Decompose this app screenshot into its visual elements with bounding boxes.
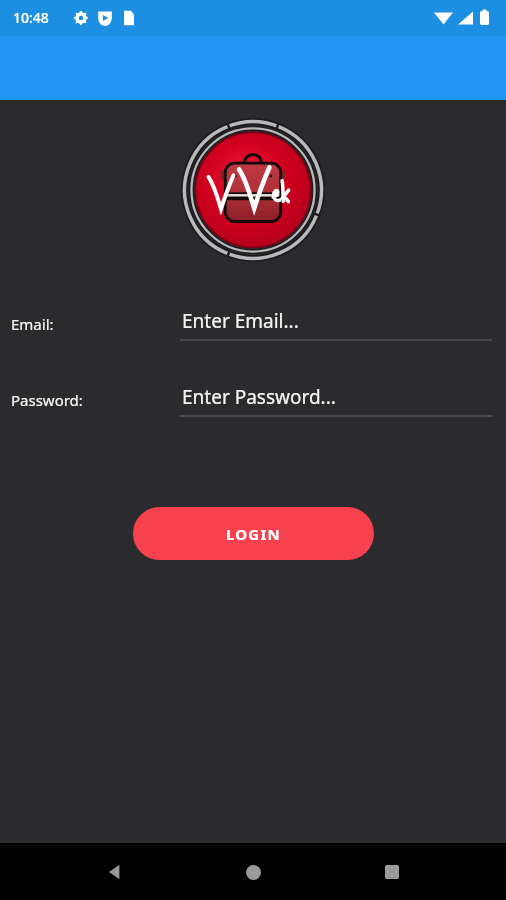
button[interactable]: Back	[91, 848, 139, 896]
button[interactable]	[181, 118, 325, 262]
button[interactable]: Home	[229, 848, 277, 896]
staticText: LOGIN	[226, 524, 281, 544]
staticText: Enter Password...	[182, 384, 336, 410]
button[interactable]: Recent apps	[368, 848, 416, 896]
button[interactable]: Enter Password...	[180, 380, 492, 420]
staticText: Password:	[11, 390, 83, 410]
button[interactable]: Enter Email...	[180, 304, 492, 344]
staticText: 10:48	[13, 8, 49, 27]
staticText: Email:	[11, 314, 54, 334]
button[interactable]: LOGIN	[133, 507, 374, 560]
staticText: Enter Email...	[182, 308, 299, 334]
